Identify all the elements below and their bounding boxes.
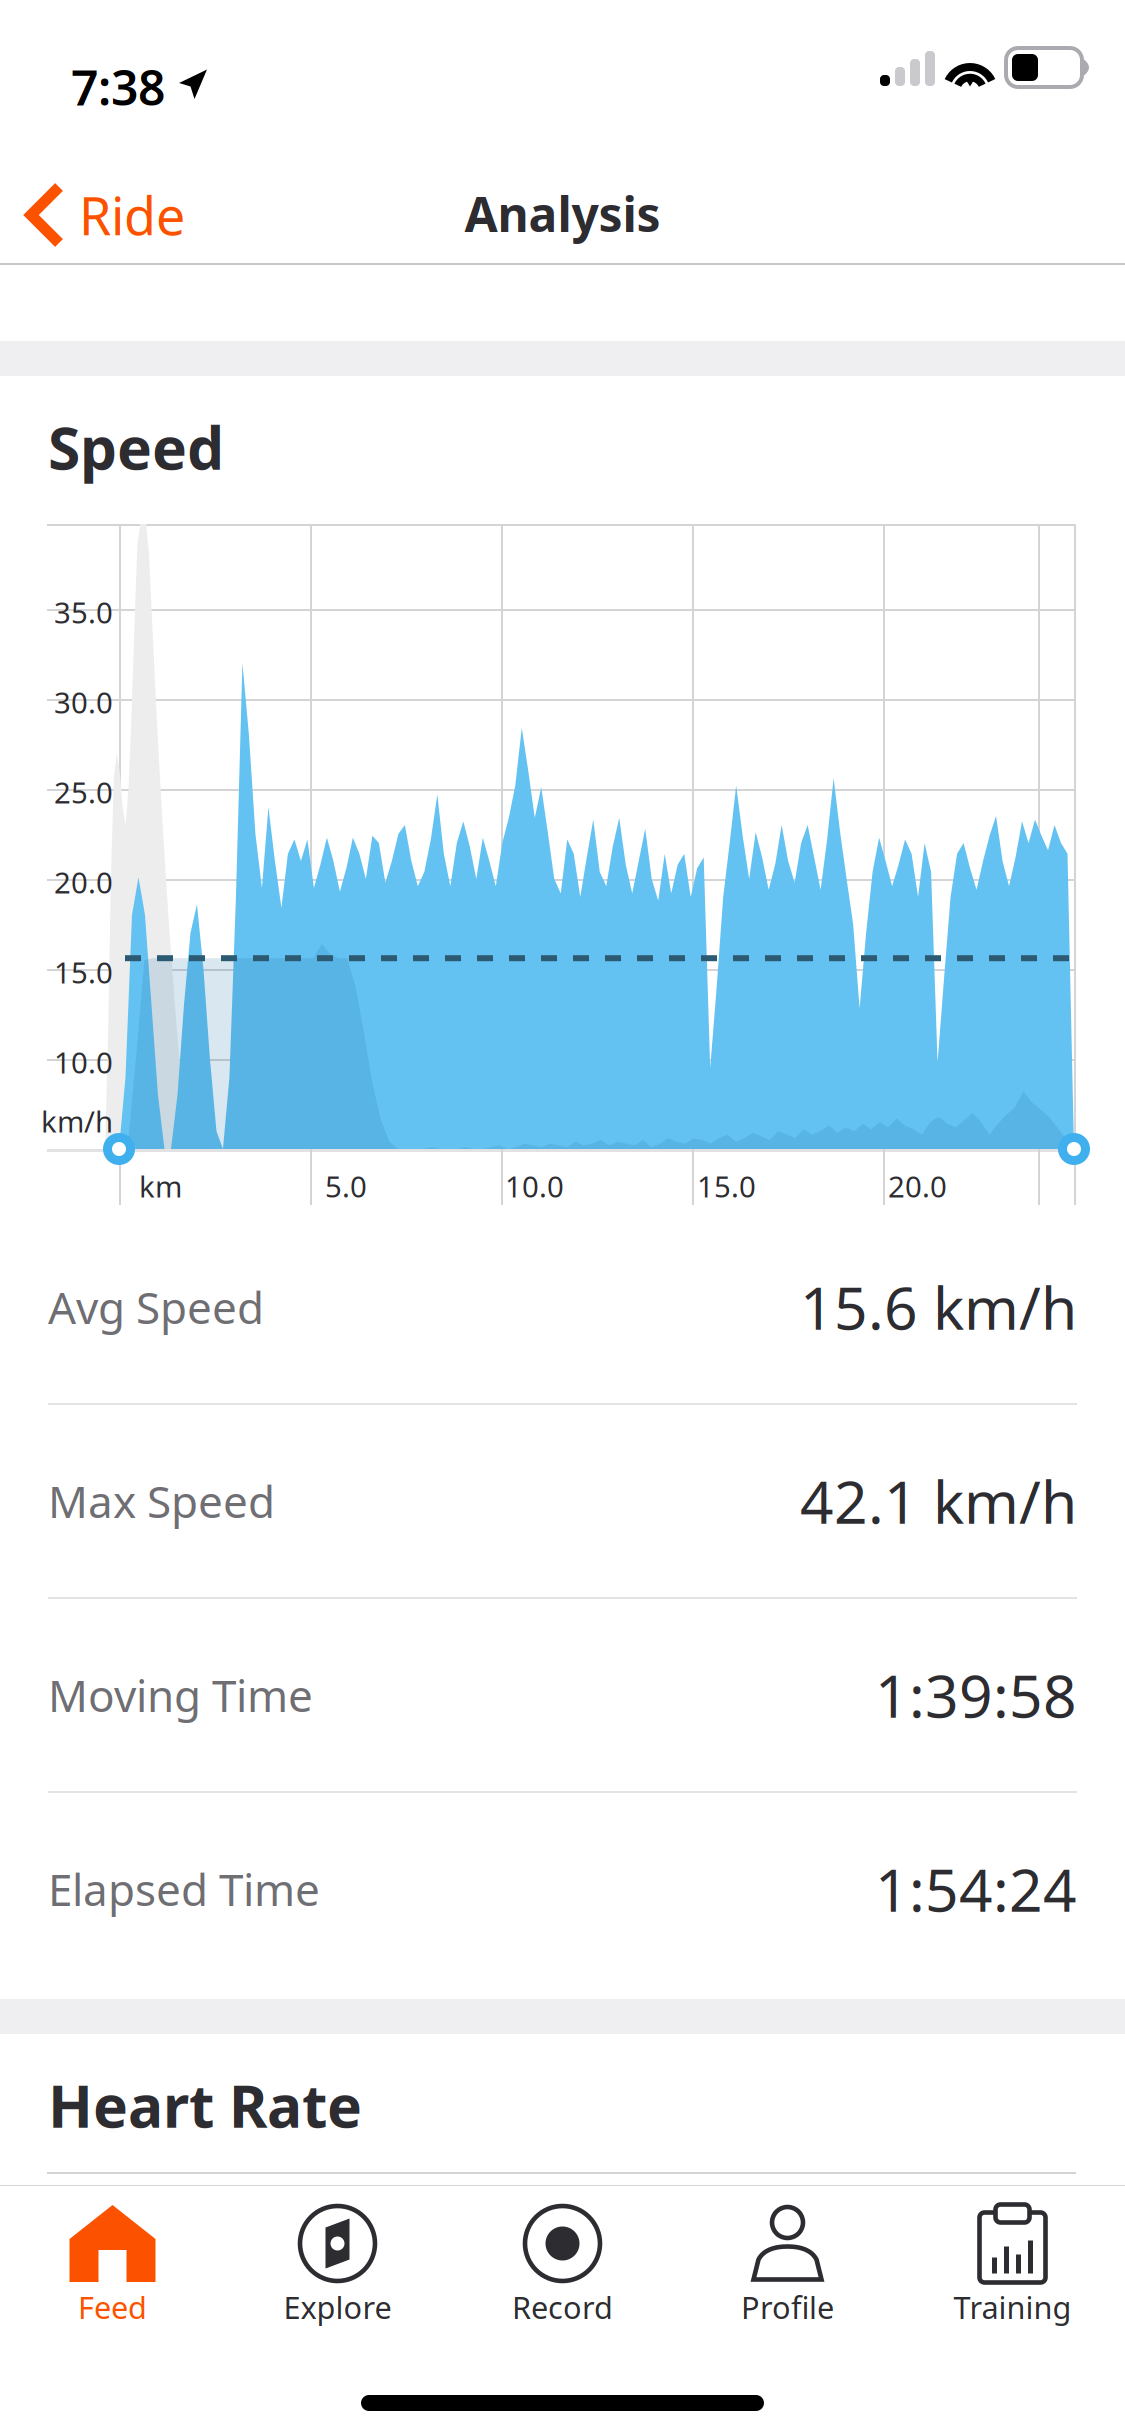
button[interactable]: Profile xyxy=(675,2209,900,2323)
button[interactable]: Ride xyxy=(7,156,215,274)
staticText: 15.0 xyxy=(54,952,113,991)
button[interactable]: Explore xyxy=(225,2209,450,2323)
button[interactable]: Max Speed xyxy=(0,1405,1125,1597)
button[interactable]: Elapsed Time xyxy=(0,1793,1125,1985)
staticText: 30.0 xyxy=(54,682,113,721)
staticText: 1:39:58 xyxy=(875,1656,1077,1734)
button[interactable]: Record xyxy=(450,2209,675,2323)
button[interactable]: Feed xyxy=(0,2209,225,2323)
staticText: 7:38 xyxy=(71,55,165,119)
button[interactable]: Range end xyxy=(1057,1132,1091,1166)
staticText: 15.0 xyxy=(697,1166,756,1205)
staticText: Record xyxy=(512,2287,613,2327)
button[interactable]: Avg Speed xyxy=(0,1211,1125,1403)
staticText: Feed xyxy=(78,2287,147,2327)
staticText: 20.0 xyxy=(888,1166,947,1205)
staticText: km/h xyxy=(41,1101,113,1140)
staticText: 15.6 km/h xyxy=(800,1268,1077,1346)
staticText: 10.0 xyxy=(54,1042,113,1081)
staticText: 10.0 xyxy=(505,1166,564,1205)
staticText: Explore xyxy=(283,2287,391,2327)
staticText: Profile xyxy=(741,2287,834,2327)
button[interactable]: Range start xyxy=(102,1132,136,1166)
staticText: Heart Rate xyxy=(48,2066,362,2144)
staticText: 1:54:24 xyxy=(875,1850,1077,1928)
staticText: km xyxy=(139,1166,182,1205)
staticText: 35.0 xyxy=(54,592,113,631)
button[interactable]: Training xyxy=(900,2209,1125,2323)
staticText: Elapsed Time xyxy=(48,1860,320,1918)
staticText: Max Speed xyxy=(48,1472,275,1530)
staticText: Moving Time xyxy=(48,1666,313,1724)
staticText: Training xyxy=(953,2287,1071,2327)
staticText: Analysis xyxy=(464,182,660,245)
staticText: 5.0 xyxy=(325,1166,367,1205)
staticText: Avg Speed xyxy=(48,1278,264,1336)
button[interactable]: Moving Time xyxy=(0,1599,1125,1791)
staticText: Speed xyxy=(48,408,224,486)
staticText: Ride xyxy=(79,180,185,250)
staticText: 42.1 km/h xyxy=(800,1462,1077,1540)
staticText: 20.0 xyxy=(54,862,113,901)
staticText: 25.0 xyxy=(54,772,113,811)
